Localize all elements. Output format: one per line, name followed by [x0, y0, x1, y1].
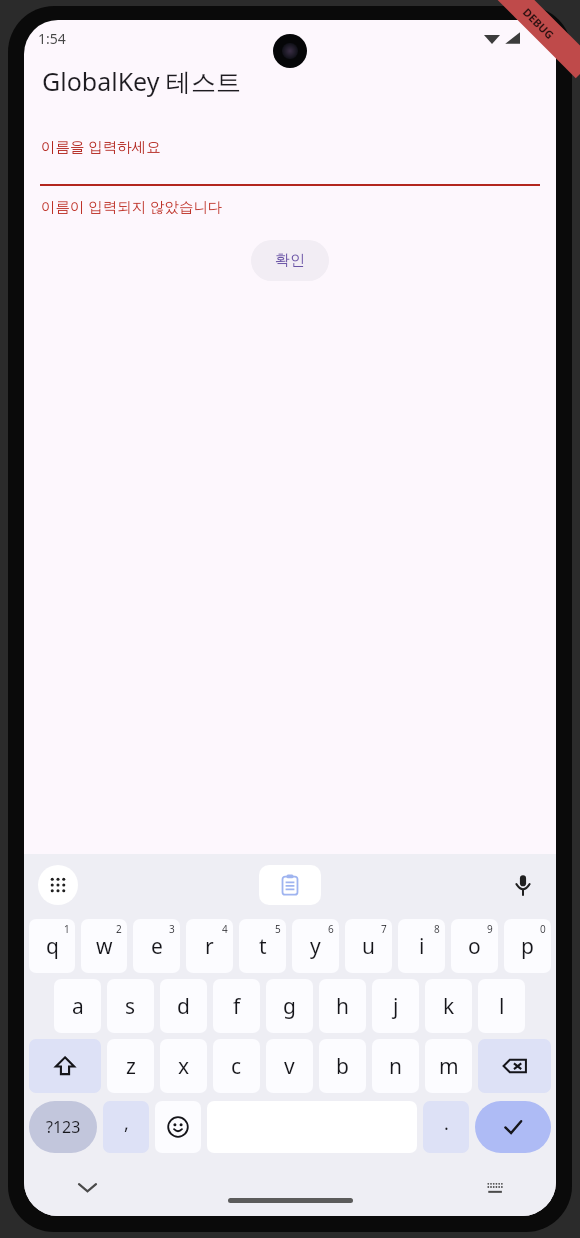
button[interactable]: r: [186, 919, 233, 973]
staticText: n: [389, 1052, 402, 1081]
button[interactable]: Shift: [29, 1039, 101, 1093]
staticText: q: [46, 932, 59, 961]
button[interactable]: x: [160, 1039, 207, 1093]
staticText: 8: [434, 922, 440, 936]
button[interactable]: j: [372, 979, 419, 1033]
staticText: m: [439, 1052, 459, 1081]
staticText: ?123: [46, 1116, 81, 1138]
button[interactable]: Apps: [38, 865, 78, 905]
staticText: j: [393, 992, 399, 1021]
button[interactable]: p: [504, 919, 551, 973]
staticText: v: [284, 1052, 295, 1081]
staticText: 이름이 입력되지 않았습니다: [41, 196, 223, 216]
button[interactable]: 확인: [251, 240, 329, 281]
button[interactable]: Paste: [259, 865, 321, 905]
staticText: g: [283, 992, 296, 1021]
staticText: 2: [116, 922, 122, 936]
staticText: w: [96, 932, 113, 961]
staticText: k: [443, 992, 455, 1021]
staticText: 3: [169, 922, 175, 936]
staticText: l: [499, 992, 505, 1021]
staticText: i: [419, 932, 425, 961]
button[interactable]: h: [319, 979, 366, 1033]
staticText: f: [233, 992, 241, 1021]
button[interactable]: z: [107, 1039, 154, 1093]
button[interactable]: .: [423, 1101, 469, 1153]
button[interactable]: Emoji: [155, 1101, 201, 1153]
button[interactable]: ,: [103, 1101, 149, 1153]
button[interactable]: a: [54, 979, 101, 1033]
staticText: p: [521, 932, 534, 961]
staticText: u: [362, 932, 375, 961]
staticText: d: [177, 992, 190, 1021]
staticText: 7: [381, 922, 387, 936]
button[interactable]: Voice input: [506, 868, 540, 902]
button[interactable]: d: [160, 979, 207, 1033]
button[interactable]: Enter: [475, 1101, 551, 1153]
button[interactable]: s: [107, 979, 154, 1033]
button[interactable]: u: [345, 919, 392, 973]
staticText: r: [205, 932, 214, 961]
button[interactable]: e: [133, 919, 180, 973]
staticText: z: [126, 1052, 136, 1081]
staticText: h: [336, 992, 349, 1021]
staticText: y: [310, 932, 321, 961]
button[interactable]: l: [478, 979, 525, 1033]
staticText: 확인: [275, 251, 305, 270]
staticText: c: [231, 1052, 242, 1081]
button[interactable]: w: [81, 919, 127, 973]
button[interactable]: n: [372, 1039, 419, 1093]
staticText: 6: [328, 922, 334, 936]
staticText: ,: [124, 1111, 129, 1136]
button[interactable]: m: [425, 1039, 472, 1093]
staticText: b: [336, 1052, 349, 1081]
staticText: s: [125, 992, 136, 1021]
button[interactable]: v: [266, 1039, 313, 1093]
button[interactable]: g: [266, 979, 313, 1033]
staticText: o: [468, 932, 481, 961]
button[interactable]: y: [292, 919, 339, 973]
staticText: 5: [275, 922, 281, 936]
staticText: 9: [487, 922, 493, 936]
staticText: 0: [540, 922, 546, 936]
button[interactable]: o: [451, 919, 498, 973]
button[interactable]: ?123: [29, 1101, 97, 1153]
staticText: 4: [222, 922, 228, 936]
staticText: 이름을 입력하세요: [41, 136, 161, 156]
staticText: e: [151, 932, 163, 961]
button[interactable]: f: [213, 979, 260, 1033]
button[interactable]: k: [425, 979, 472, 1033]
staticText: 1:54: [38, 29, 66, 48]
button[interactable]: i: [398, 919, 445, 973]
staticText: t: [259, 932, 267, 961]
button[interactable]: t: [239, 919, 286, 973]
staticText: a: [72, 992, 84, 1021]
button[interactable]: c: [213, 1039, 260, 1093]
staticText: .: [444, 1111, 449, 1136]
button[interactable]: q: [29, 919, 75, 973]
button[interactable]: Backspace: [478, 1039, 551, 1093]
staticText: x: [178, 1052, 190, 1081]
staticText: 1: [64, 922, 70, 936]
staticText: GlobalKey 테스트: [42, 64, 241, 98]
button[interactable]: Switch keyboard: [480, 1172, 510, 1202]
button[interactable]: Hide keyboard: [72, 1172, 102, 1202]
staticText: DEBUG: [520, 5, 557, 42]
button[interactable]: b: [319, 1039, 366, 1093]
